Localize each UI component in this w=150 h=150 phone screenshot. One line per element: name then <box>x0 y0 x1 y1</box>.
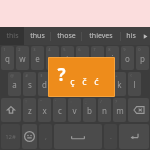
button[interactable]: * <box>83 72 96 96</box>
staticText: o <box>125 53 130 64</box>
button[interactable]: Emoji <box>22 124 37 149</box>
button[interactable]: 7 <box>91 46 104 70</box>
button[interactable]: 2 <box>16 46 29 70</box>
button[interactable]: ? <box>113 98 126 122</box>
button[interactable]: 1 <box>1 46 14 70</box>
staticText: @ <box>10 73 14 78</box>
staticText: ' <box>55 99 56 104</box>
staticText: ç <box>70 75 75 87</box>
staticText: p <box>140 53 145 64</box>
button[interactable]: / <box>98 98 111 122</box>
staticText: + <box>115 73 118 78</box>
staticText: a <box>12 79 17 90</box>
button[interactable]: # <box>23 72 36 96</box>
staticText: 2 <box>18 47 21 52</box>
staticText: l <box>133 79 136 90</box>
staticText: 6 <box>78 47 81 52</box>
button[interactable]: : <box>68 98 81 122</box>
button[interactable]: those <box>51 27 81 45</box>
staticText: ( <box>130 73 132 78</box>
button[interactable]: thieves <box>82 27 120 45</box>
button[interactable]: his <box>121 27 141 45</box>
staticText: f <box>58 79 61 90</box>
button[interactable]: thus <box>24 27 50 45</box>
staticText: n <box>102 105 107 116</box>
button[interactable]: Shift <box>1 98 21 122</box>
button[interactable]: 0 <box>136 46 149 70</box>
staticText: k <box>117 79 122 90</box>
button[interactable]: ; <box>83 98 96 122</box>
button[interactable]: $ <box>38 72 51 96</box>
button[interactable]: 4 <box>46 46 59 70</box>
staticText: g <box>72 79 77 90</box>
button[interactable]: ! <box>23 98 36 122</box>
staticText: u <box>95 53 100 64</box>
staticText: 7 <box>93 47 96 52</box>
staticText: " <box>40 99 42 104</box>
button[interactable]: 5 <box>61 46 74 70</box>
staticText: 4 <box>48 47 51 52</box>
staticText: his <box>126 31 136 41</box>
button[interactable]: ' <box>53 98 66 122</box>
staticText: x <box>42 105 47 116</box>
staticText: ć <box>94 75 99 87</box>
button[interactable]: @ <box>8 72 21 96</box>
staticText: those <box>57 31 76 41</box>
staticText: 5 <box>63 47 66 52</box>
button[interactable]: + <box>113 72 126 96</box>
staticText: . <box>110 132 112 142</box>
staticText: b <box>87 105 92 116</box>
staticText: s <box>28 79 32 90</box>
button[interactable]: - <box>98 72 111 96</box>
staticText: c <box>58 105 62 116</box>
button[interactable]: More suggestions <box>141 27 150 45</box>
staticText: this <box>6 31 19 41</box>
button[interactable]: Enter <box>119 124 149 149</box>
button[interactable]: ( <box>128 72 141 96</box>
staticText: $ <box>40 73 43 78</box>
button[interactable]: 12# <box>1 124 20 149</box>
staticText: m <box>116 105 124 116</box>
button[interactable]: " <box>38 98 51 122</box>
button[interactable]: % <box>53 72 66 96</box>
button[interactable]: ? <box>49 58 114 96</box>
button[interactable]: this <box>0 27 24 45</box>
staticText: t <box>66 53 69 64</box>
staticText: y <box>80 53 85 64</box>
staticText: z <box>28 105 32 116</box>
staticText: ? <box>115 99 117 104</box>
button[interactable]: 3 <box>31 46 44 70</box>
staticText: 8 <box>108 47 111 52</box>
staticText: d <box>42 79 47 90</box>
staticText: ? <box>57 63 66 86</box>
button[interactable]: Backspace <box>128 98 149 122</box>
button[interactable]: 9 <box>121 46 134 70</box>
staticText: thieves <box>89 31 113 41</box>
staticText: i <box>111 53 114 64</box>
staticText: 0 <box>138 47 141 52</box>
staticText: r <box>51 53 55 64</box>
staticText: v <box>72 105 77 116</box>
staticText: , <box>45 132 47 142</box>
button[interactable]: Space <box>54 124 102 149</box>
button[interactable]: 6 <box>76 46 89 70</box>
staticText: 9 <box>123 47 126 52</box>
button[interactable]: 8 <box>106 46 119 70</box>
button[interactable]: & <box>68 72 81 96</box>
staticText: w <box>19 53 26 64</box>
staticText: 12# <box>5 133 16 141</box>
staticText: 3 <box>33 47 36 52</box>
staticText: / <box>100 99 102 104</box>
staticText: thus <box>30 31 45 41</box>
